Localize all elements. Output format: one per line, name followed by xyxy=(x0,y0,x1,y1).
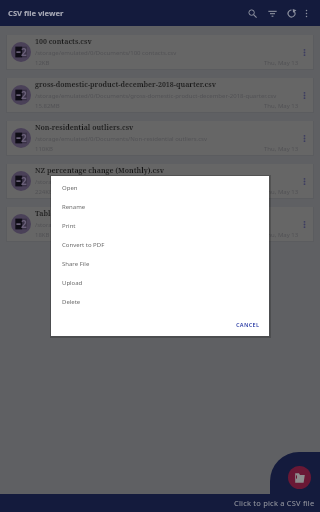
staticText: CSV file viewer xyxy=(8,8,64,18)
staticText: 18KB xyxy=(35,231,50,239)
staticText: Delete xyxy=(62,298,81,306)
button[interactable]: CANCEL xyxy=(236,319,269,328)
staticText: Click to pick a CSV file xyxy=(234,498,315,508)
button[interactable]: Share File xyxy=(51,254,269,273)
button[interactable]: Refresh xyxy=(282,4,301,23)
staticText: Convert to PDF xyxy=(62,241,105,249)
button[interactable]: 2 xyxy=(7,121,313,155)
button[interactable]: More options xyxy=(295,78,313,112)
button[interactable]: More options xyxy=(295,35,313,69)
button[interactable]: More options xyxy=(295,121,313,155)
staticText: /storage/emulated/0/Documents/Non-reside… xyxy=(35,135,207,143)
staticText: 224KB xyxy=(35,188,53,196)
button[interactable]: Open xyxy=(51,178,269,197)
staticText: CANCEL xyxy=(236,321,260,328)
staticText: 15.82MB xyxy=(35,102,60,110)
staticText: Upload xyxy=(62,279,83,287)
staticText: Thu, May 13 xyxy=(264,231,299,239)
staticText: Non-residential outliers.csv xyxy=(35,123,134,133)
staticText: Thu, May 13 xyxy=(264,102,299,110)
staticText: /storage/emulated/0/Documents/gross-dome… xyxy=(35,92,277,100)
button[interactable]: Rename xyxy=(51,197,269,216)
button[interactable]: Filter xyxy=(263,4,282,23)
button[interactable]: Delete xyxy=(51,292,269,311)
button[interactable]: More options xyxy=(297,4,316,23)
button[interactable]: Search xyxy=(243,4,262,23)
staticText: 2 xyxy=(21,174,27,188)
staticText: NZ percentage change (Monthly).csv xyxy=(35,166,164,176)
staticText: Thu, May 13 xyxy=(264,145,299,153)
button[interactable]: 2 xyxy=(7,35,313,69)
button[interactable]: 2 xyxy=(7,78,313,112)
staticText: 12KB xyxy=(35,59,50,67)
button[interactable]: Print xyxy=(51,216,269,235)
staticText: 2 xyxy=(21,88,27,102)
staticText: Open xyxy=(62,184,78,192)
staticText: Table.csv xyxy=(35,209,68,219)
staticText: /storage/emulated/0/Documents/Table.csv xyxy=(35,221,156,229)
staticText: Rename xyxy=(62,203,86,211)
staticText: 100 contacts.csv xyxy=(35,37,92,47)
button[interactable]: 2 xyxy=(7,207,313,241)
staticText: 2 xyxy=(21,217,27,231)
staticText: gross-domestic-product-december-2018-qua… xyxy=(35,80,216,90)
staticText: Thu, May 13 xyxy=(264,59,299,67)
staticText: /storage/emulated/0/Documents/100 contac… xyxy=(35,49,177,57)
button[interactable]: 2 xyxy=(7,164,313,198)
button[interactable]: Pick a CSV file xyxy=(288,466,311,489)
staticText: Print xyxy=(62,222,76,230)
button[interactable]: Click to pick a CSV file xyxy=(0,494,320,512)
button[interactable]: More options xyxy=(295,164,313,198)
staticText: 2 xyxy=(21,45,27,59)
staticText: Thu, May 13 xyxy=(264,188,299,196)
staticText: /storage/emulated/0/Documents/NZ percent… xyxy=(35,178,233,186)
button[interactable]: Convert to PDF xyxy=(51,235,269,254)
button[interactable]: Upload xyxy=(51,273,269,292)
button[interactable]: More options xyxy=(295,207,313,241)
staticText: 2 xyxy=(21,131,27,145)
staticText: 110KB xyxy=(35,145,53,153)
staticText: Share File xyxy=(62,260,90,268)
